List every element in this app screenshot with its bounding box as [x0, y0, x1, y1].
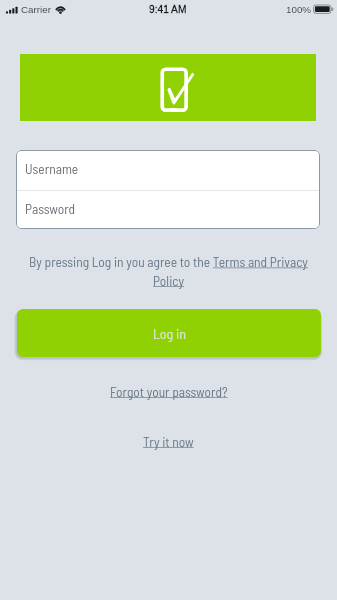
staticText: 100% [286, 4, 312, 15]
button[interactable]: Log in [17, 309, 321, 357]
staticText: Try it now [143, 433, 194, 449]
staticText: Forgot your password? [110, 383, 228, 399]
staticText: Carrier [21, 4, 51, 15]
staticText: By pressing Log in you agree to the Term… [26, 253, 311, 288]
button[interactable]: Password [16, 191, 320, 229]
staticText: Log in [153, 325, 186, 342]
button[interactable]: Username [16, 150, 320, 190]
staticText: Username [25, 160, 79, 176]
button[interactable]: Forgot your password? [104, 379, 234, 403]
staticText: Password [25, 200, 76, 216]
staticText: 9:41 AM [149, 4, 187, 15]
button[interactable]: Try it now [137, 429, 200, 453]
